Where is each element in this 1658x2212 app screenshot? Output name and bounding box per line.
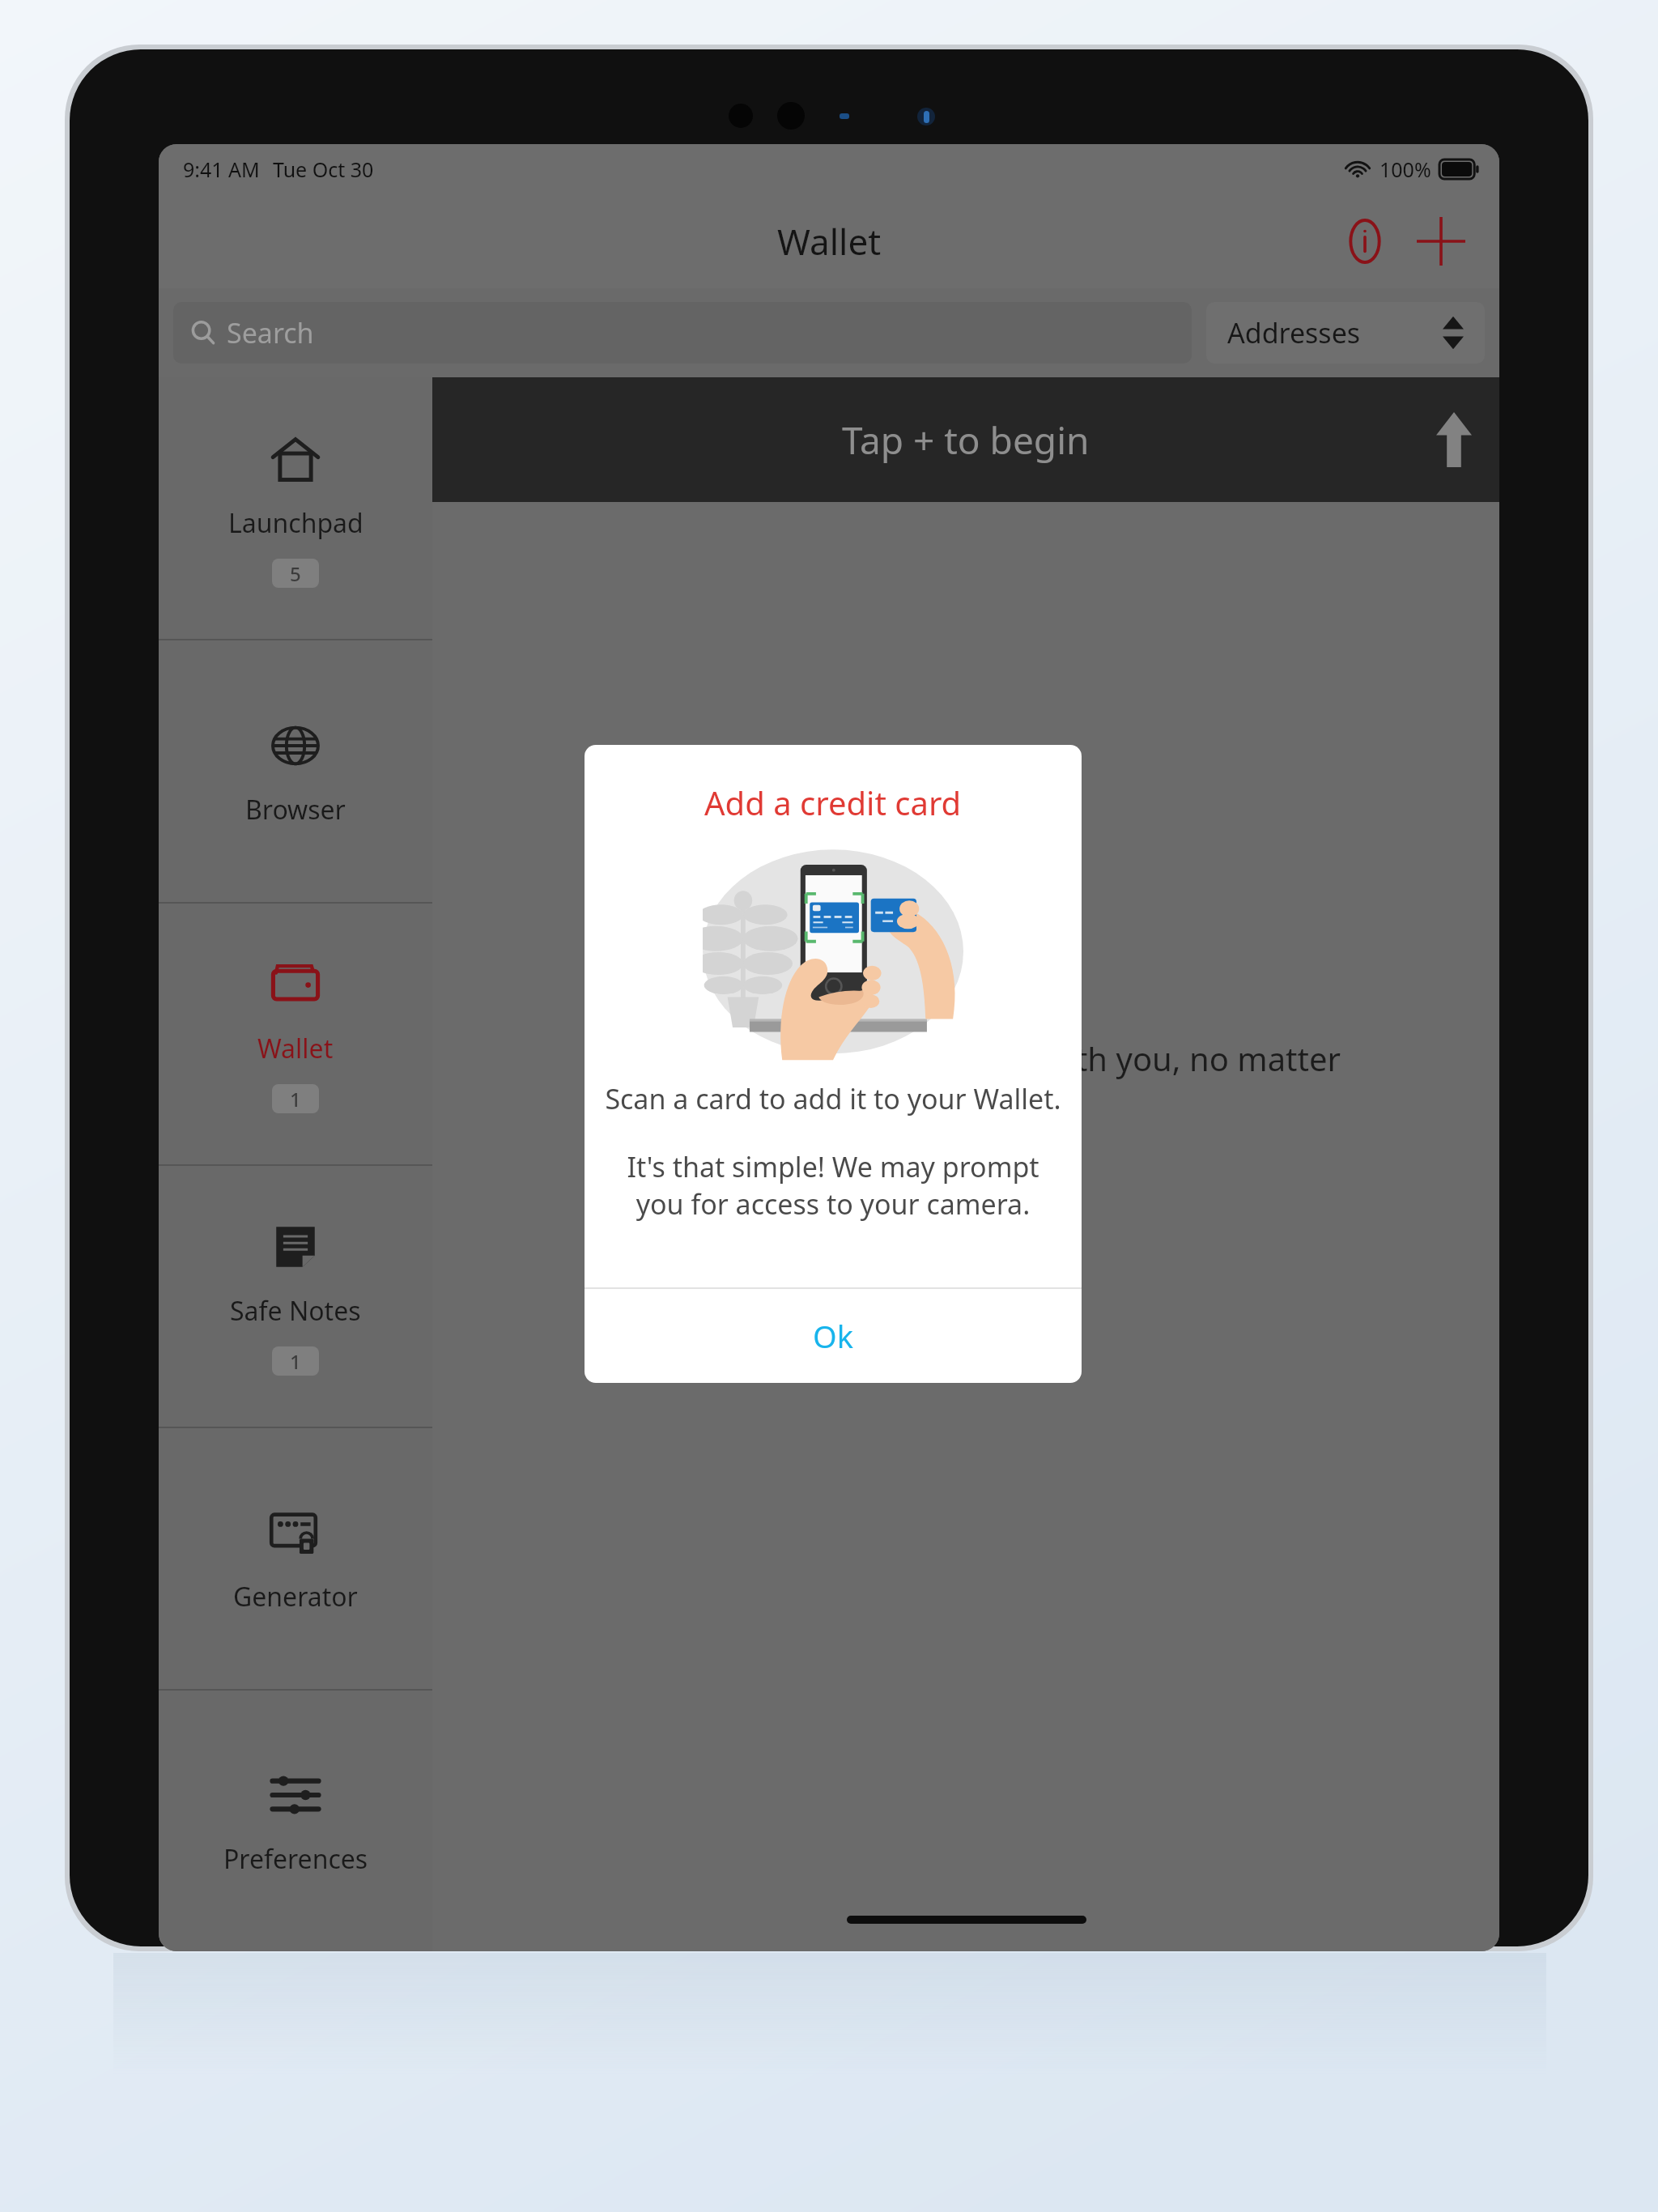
staticText: Wallet (777, 217, 882, 266)
staticText: Browser (245, 792, 346, 827)
staticText: It's that simple! We may prompt you for … (627, 1148, 1039, 1223)
staticText: Add a credit card (704, 781, 962, 824)
staticText: Preferences (223, 1841, 368, 1877)
staticText: Launchpad (228, 505, 363, 541)
staticText: Search (227, 314, 314, 351)
staticText: Tue Oct 30 (273, 155, 374, 183)
button[interactable]: Wallet (159, 904, 432, 1164)
staticText: 5 (290, 560, 301, 587)
button[interactable]: Preferences (159, 1691, 432, 1951)
button[interactable]: Generator (159, 1428, 432, 1689)
button[interactable]: Information (1328, 204, 1402, 279)
staticText: Addresses (1227, 314, 1361, 351)
staticText: 1 (290, 1086, 301, 1112)
button[interactable]: Tap + to begin (432, 377, 1499, 502)
button[interactable]: Add (1402, 202, 1480, 280)
staticText: Wallet (257, 1031, 334, 1066)
button[interactable]: Safe Notes (159, 1166, 432, 1427)
staticText: 9:41 AM (183, 155, 260, 183)
staticText: 100% (1380, 155, 1431, 183)
staticText: Generator (233, 1579, 358, 1614)
button[interactable]: Search (173, 302, 1192, 364)
staticText: Tap + to begin (842, 415, 1090, 466)
staticText: 1 (290, 1348, 301, 1375)
button[interactable]: Browser (159, 640, 432, 902)
staticText: Safe Notes (230, 1293, 361, 1329)
staticText: Scan a card to add it to your Wallet. (605, 1080, 1061, 1117)
staticText: Ok (813, 1315, 853, 1357)
staticText: Secure your data, and keep it with you, … (455, 1036, 1477, 1080)
button[interactable]: Launchpad (159, 377, 432, 639)
button[interactable]: Addresses (1206, 302, 1485, 364)
button[interactable]: Ok (585, 1289, 1082, 1383)
